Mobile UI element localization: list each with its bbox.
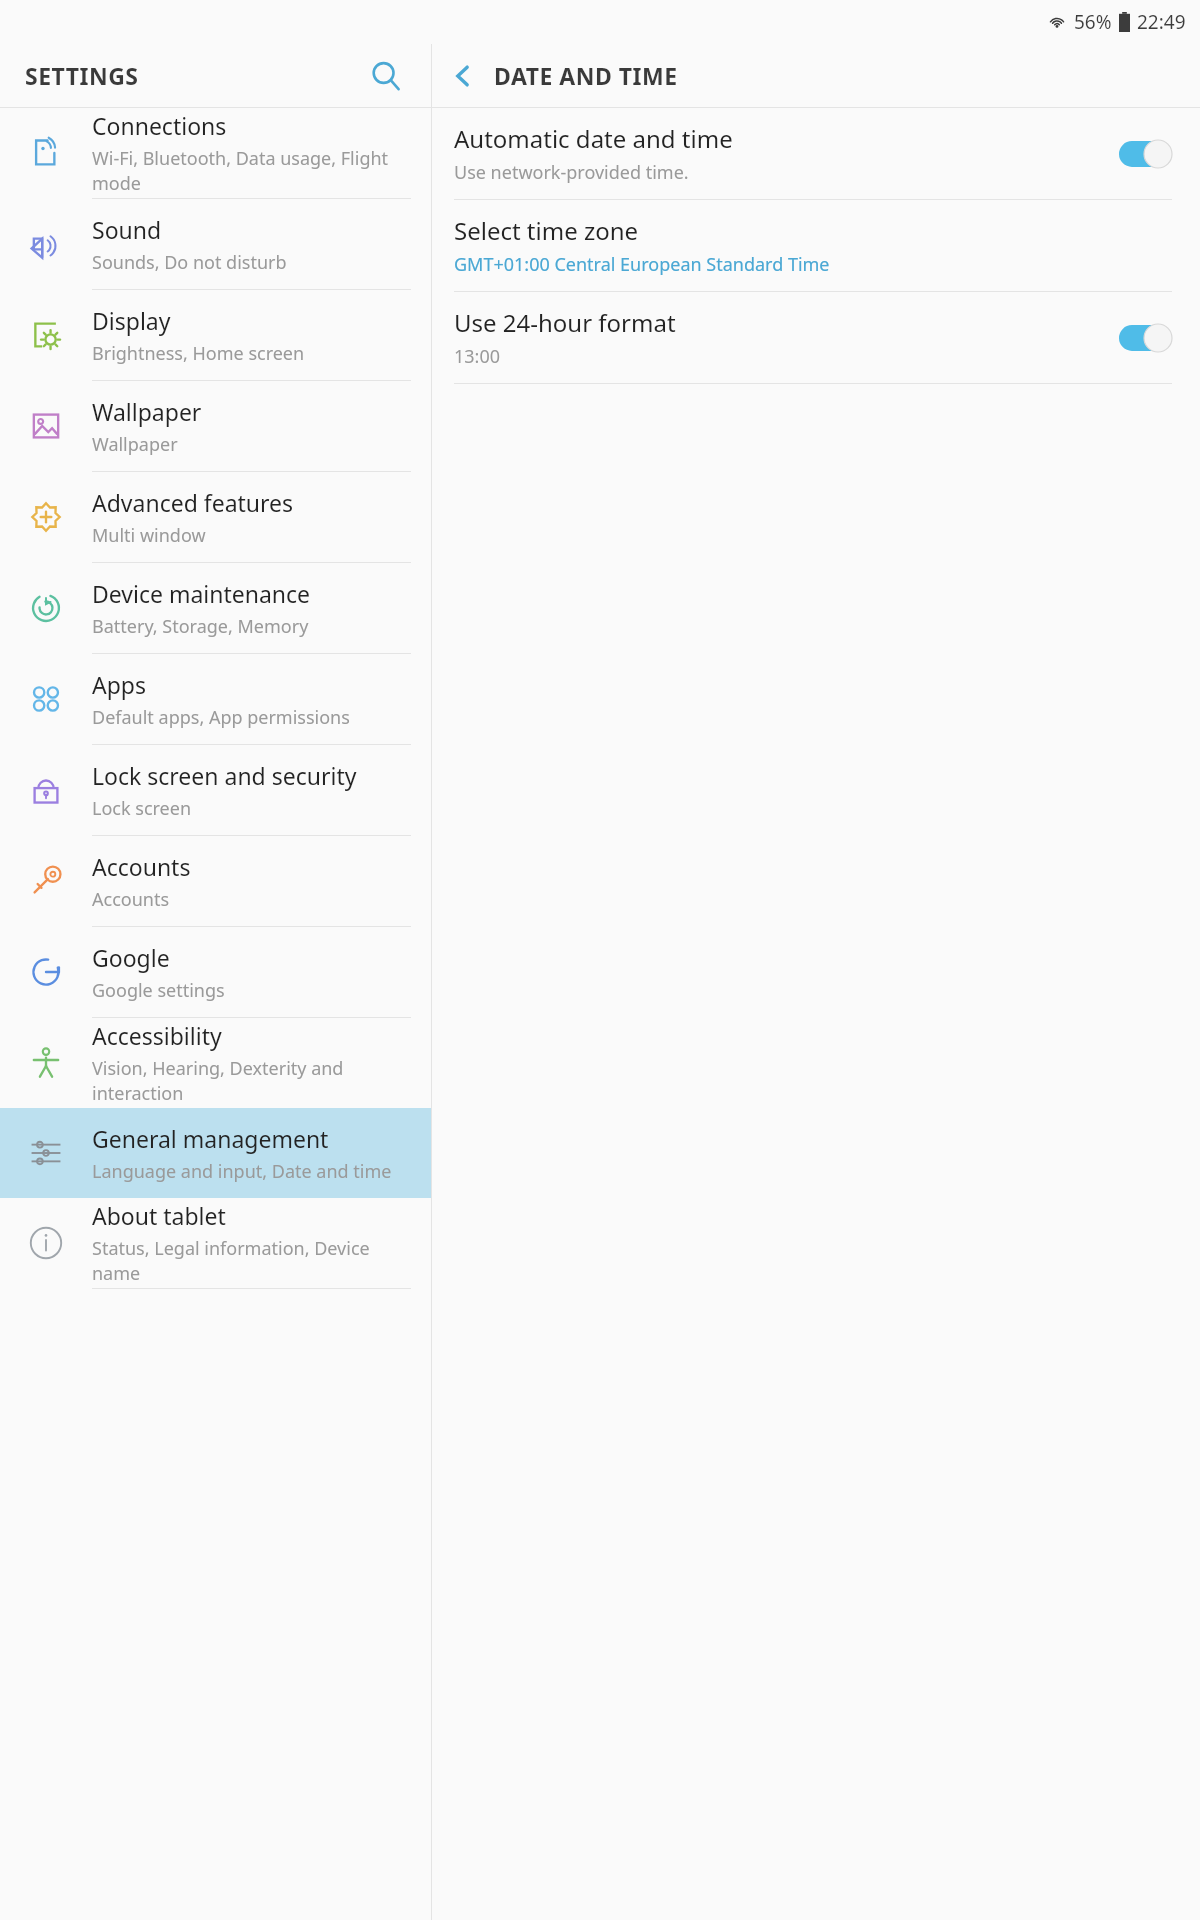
staticText: Automatic date and time: [454, 122, 733, 155]
staticText: Device maintenance: [92, 578, 311, 609]
staticText: Connections: [92, 110, 227, 141]
staticText: Advanced features: [92, 487, 294, 518]
staticText: General management: [92, 1123, 329, 1154]
button[interactable]: Select time zone: [432, 200, 1200, 291]
button[interactable]: Accessibility: [0, 1018, 431, 1108]
staticText: Use 24-hour format: [454, 306, 676, 339]
staticText: Wallpaper: [92, 432, 178, 457]
staticText: Vision, Hearing, Dexterity and interacti…: [92, 1056, 415, 1106]
button[interactable]: Accounts: [0, 836, 431, 927]
staticText: Lock screen and security: [92, 760, 357, 791]
staticText: Google settings: [92, 978, 225, 1003]
staticText: Wallpaper: [92, 396, 202, 427]
button[interactable]: Display: [0, 290, 431, 381]
button[interactable]: General management: [0, 1108, 431, 1198]
button[interactable]: About tablet: [0, 1198, 431, 1289]
button[interactable]: Google: [0, 927, 431, 1018]
staticText: Brightness, Home screen: [92, 341, 305, 366]
staticText: Battery, Storage, Memory: [92, 614, 309, 639]
staticText: 13:00: [454, 344, 501, 369]
button[interactable]: SETTINGS: [0, 44, 431, 107]
staticText: Lock screen: [92, 796, 192, 821]
staticText: 22:49: [1137, 9, 1186, 35]
button[interactable]: Lock screen and security: [0, 745, 431, 836]
staticText: Language and input, Date and time: [92, 1159, 392, 1184]
staticText: Multi window: [92, 523, 206, 548]
staticText: About tablet: [92, 1200, 226, 1231]
button[interactable]: Automatic date and time: [1108, 134, 1172, 174]
staticText: Default apps, App permissions: [92, 705, 350, 730]
button[interactable]: Search: [359, 49, 413, 103]
staticText: Google: [92, 942, 170, 973]
staticText: GMT+01:00 Central European Standard Time: [454, 252, 830, 277]
staticText: Display: [92, 305, 171, 336]
button[interactable]: Use 24-hour format: [432, 292, 1200, 383]
staticText: Sounds, Do not disturb: [92, 250, 287, 275]
staticText: SETTINGS: [25, 60, 139, 91]
button[interactable]: Connections: [0, 108, 431, 199]
button[interactable]: Use 24-hour format: [1108, 318, 1172, 358]
button[interactable]: Apps: [0, 654, 431, 745]
staticText: Wi-Fi, Bluetooth, Data usage, Flight mod…: [92, 146, 415, 196]
staticText: Select time zone: [454, 214, 639, 247]
button[interactable]: Wallpaper: [0, 381, 431, 472]
button[interactable]: Device maintenance: [0, 563, 431, 654]
staticText: Accounts: [92, 887, 170, 912]
staticText: Accounts: [92, 851, 191, 882]
staticText: Sound: [92, 214, 162, 245]
staticText: 56%: [1074, 9, 1112, 35]
staticText: DATE AND TIME: [494, 60, 678, 91]
button[interactable]: Automatic date and time: [432, 108, 1200, 199]
staticText: Status, Legal information, Device name: [92, 1236, 415, 1286]
button[interactable]: Sound: [0, 199, 431, 290]
button[interactable]: Advanced features: [0, 472, 431, 563]
button[interactable]: Back: [432, 44, 494, 107]
staticText: Apps: [92, 669, 147, 700]
staticText: Accessibility: [92, 1020, 222, 1051]
staticText: Use network-provided time.: [454, 160, 689, 185]
